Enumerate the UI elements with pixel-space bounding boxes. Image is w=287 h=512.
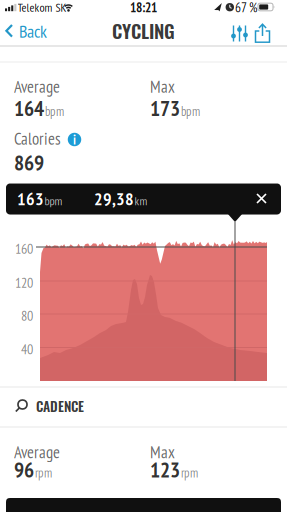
staticText: 869 bbox=[14, 149, 44, 176]
staticText: rpm bbox=[181, 464, 198, 481]
staticText: Max bbox=[150, 441, 175, 463]
staticText: 120 bbox=[15, 273, 33, 291]
staticText: CYCLING bbox=[112, 17, 175, 44]
button[interactable]: Share bbox=[254, 23, 271, 43]
staticText: 163 bbox=[17, 187, 44, 210]
button[interactable]: Back bbox=[5, 19, 47, 43]
staticText: 67 % bbox=[235, 0, 257, 16]
staticText: Telekom SK bbox=[17, 0, 66, 15]
staticText: Calories bbox=[14, 128, 61, 149]
staticText: 173 bbox=[150, 94, 180, 122]
staticText: bpm bbox=[45, 103, 64, 119]
staticText: 18:21 bbox=[130, 0, 157, 16]
staticText: Average bbox=[14, 441, 60, 463]
staticText: km bbox=[134, 193, 147, 208]
staticText: 96 bbox=[14, 456, 34, 483]
staticText: bpm bbox=[181, 103, 200, 119]
staticText: Max bbox=[150, 76, 175, 97]
staticText: 164 bbox=[14, 94, 44, 122]
staticText: CADENCE bbox=[36, 396, 84, 416]
staticText: rpm bbox=[35, 464, 52, 481]
button[interactable]: Close bbox=[256, 193, 267, 204]
staticText: bpm bbox=[44, 193, 62, 208]
button[interactable]: Calories info bbox=[68, 131, 81, 148]
staticText: 29,38 bbox=[94, 187, 134, 210]
button[interactable]: Adjust bbox=[230, 24, 248, 42]
staticText: 40 bbox=[21, 340, 33, 358]
staticText: Back bbox=[19, 19, 47, 43]
staticText: 160 bbox=[15, 239, 33, 257]
staticText: i bbox=[73, 131, 76, 148]
staticText: Average bbox=[14, 76, 60, 97]
staticText: 123 bbox=[150, 456, 180, 483]
staticText: 80 bbox=[21, 306, 33, 324]
